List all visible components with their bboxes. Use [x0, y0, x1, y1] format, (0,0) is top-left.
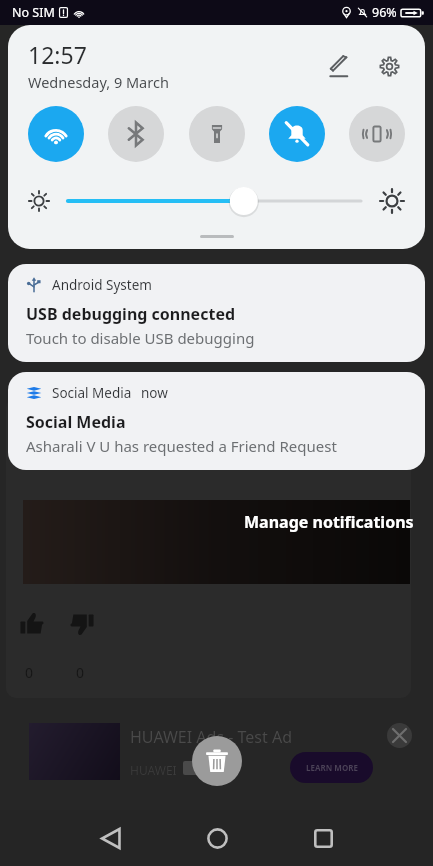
staticText: Android System — [52, 276, 152, 294]
button[interactable]: Close ad — [387, 723, 412, 748]
button[interactable]: Mute — [269, 106, 325, 162]
button[interactable]: Flashlight — [189, 106, 245, 162]
button[interactable] — [68, 184, 361, 218]
staticText: No SIM — [12, 4, 55, 21]
staticText: Asharali V U has requested a Friend Requ… — [26, 436, 337, 456]
staticText: 0 — [25, 663, 34, 682]
staticText: Touch to disable USB debugging — [26, 328, 255, 348]
button[interactable]: Android System — [8, 264, 425, 362]
button[interactable]: Bluetooth — [108, 106, 164, 162]
staticText: HUAWEI — [130, 762, 177, 778]
button[interactable]: LEARN MORE — [290, 752, 373, 783]
button[interactable]: Social Media — [8, 372, 425, 470]
button[interactable]: Home — [178, 810, 256, 866]
staticText: Manage notifications — [244, 511, 414, 533]
button[interactable]: Wi-Fi — [28, 106, 84, 162]
button[interactable]: Edit — [319, 46, 359, 86]
staticText: Social Media — [26, 411, 126, 433]
button[interactable]: Back — [72, 810, 150, 866]
staticText: USB debugging connected — [26, 303, 236, 325]
staticText: 0 — [76, 663, 85, 682]
button[interactable]: Settings — [369, 46, 409, 86]
staticText: HUAWEI Ads - Test Ad — [130, 726, 293, 748]
staticText: LEARN MORE — [306, 762, 358, 773]
staticText: Social Media — [52, 384, 132, 402]
button[interactable]: Vibrate — [349, 106, 405, 162]
staticText: 96% — [372, 4, 397, 21]
staticText: now — [141, 384, 168, 402]
staticText: Wednesday, 9 March — [28, 72, 169, 92]
staticText: 12:57 — [28, 39, 87, 70]
button[interactable]: Delete — [192, 736, 242, 786]
button[interactable]: Recents — [284, 810, 362, 866]
